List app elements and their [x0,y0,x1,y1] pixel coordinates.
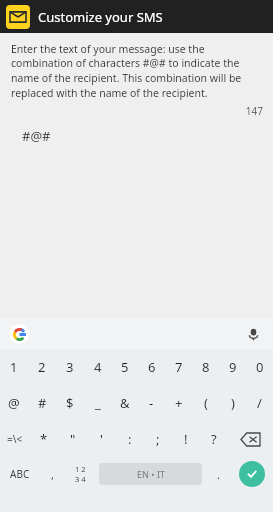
button[interactable]: 5 [111,349,138,385]
button[interactable]: 2 [28,349,56,385]
button[interactable]: . [205,457,231,491]
staticText: @ [8,394,20,412]
button[interactable]: 6 [138,349,165,385]
button[interactable]: ? [200,421,228,457]
staticText: ) [231,394,235,412]
staticText: . [217,467,220,482]
button[interactable]: =\< [0,421,29,457]
button[interactable]: EN • IT [99,463,202,485]
button[interactable]: * [29,421,58,457]
button[interactable]: # [28,385,56,421]
button[interactable]: 1 2 [65,457,96,491]
button[interactable]: 9 [219,349,246,385]
staticText: 6 [148,358,156,376]
staticText: 147 [0,104,263,118]
button[interactable]: & [111,385,138,421]
staticText: Enter the text of your message: use the … [11,42,259,100]
button[interactable]: 8 [192,349,219,385]
staticText: 7 [175,358,183,376]
button[interactable]: " [58,421,87,457]
button[interactable]: _ [84,385,111,421]
button[interactable]: @ [0,385,28,421]
staticText: & [120,394,130,412]
staticText: #@# [22,127,51,145]
button[interactable]: ABC [0,457,39,491]
button[interactable]: 7 [165,349,192,385]
staticText: ( [204,394,208,412]
staticText: 8 [202,358,210,376]
staticText: =\< [7,432,23,446]
staticText: 0 [256,358,264,376]
staticText: , [51,467,54,482]
staticText: EN • IT [137,468,165,480]
button[interactable]: Voice input [242,323,264,345]
staticText: ' [100,430,103,448]
button[interactable]: Backspace [228,421,273,457]
staticText: $ [66,394,74,412]
staticText: : [128,430,132,448]
staticText: * [40,430,48,448]
button[interactable]: 3 [56,349,84,385]
staticText: # [38,394,47,412]
button[interactable]: #@# [14,127,259,145]
button[interactable]: ) [219,385,246,421]
button[interactable]: / [246,385,273,421]
button[interactable]: 4 [84,349,111,385]
staticText: _ [95,394,101,412]
staticText: Customize your SMS [38,8,163,26]
button[interactable]: ! [172,421,200,457]
other: App icon [6,5,30,29]
button[interactable]: ; [144,421,172,457]
button[interactable]: ' [87,421,116,457]
staticText: 9 [229,358,237,376]
staticText: 4 [94,358,102,376]
staticText: ! [184,430,188,448]
button[interactable]: 1 [0,349,28,385]
button[interactable]: Google [9,324,29,344]
button[interactable]: 0 [246,349,273,385]
staticText: 1 2 [75,464,86,474]
button[interactable]: , [39,457,65,491]
staticText: ; [156,430,160,448]
staticText: ABC [10,467,30,481]
staticText: + [175,394,183,412]
button[interactable]: : [116,421,144,457]
button[interactable]: Enter [239,461,265,487]
staticText: ? [211,430,217,448]
staticText: / [257,394,262,412]
staticText: " [70,430,76,448]
staticText: 2 [38,358,46,376]
staticText: 3 4 [75,474,86,484]
staticText: 3 [66,358,74,376]
staticText: 5 [121,358,129,376]
staticText: - [149,394,154,412]
button[interactable]: - [138,385,165,421]
staticText: 1 [10,358,18,376]
button[interactable]: + [165,385,192,421]
button[interactable]: $ [56,385,84,421]
button[interactable]: ( [192,385,219,421]
